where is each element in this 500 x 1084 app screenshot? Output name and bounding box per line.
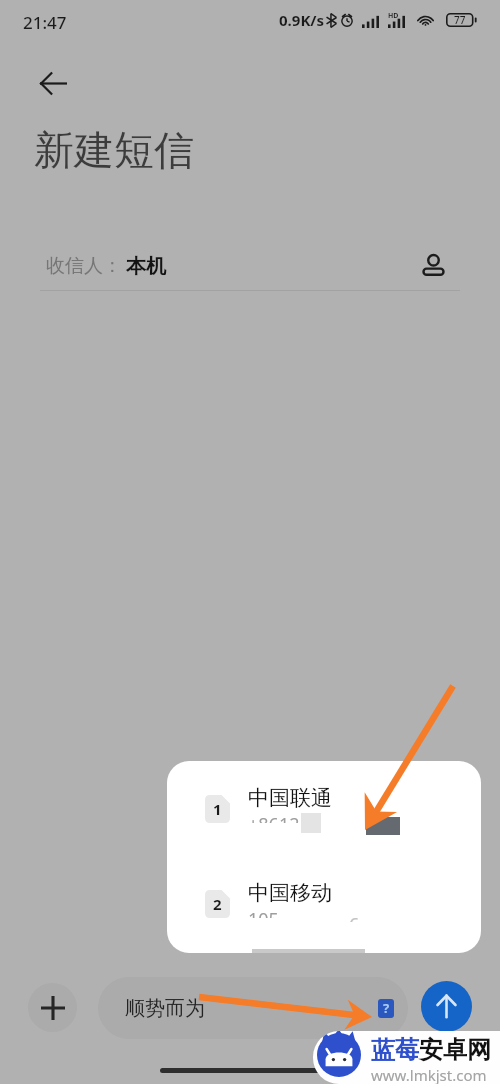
button[interactable]: 1 (167, 785, 481, 857)
button[interactable]: Add attachment (28, 983, 77, 1032)
staticText: 21:47 (23, 11, 67, 34)
button[interactable]: 顺势而为 (98, 977, 408, 1039)
staticText: www.lmkjst.com (371, 1065, 487, 1084)
staticText: ? (383, 999, 390, 1017)
staticText: 1 (213, 799, 222, 819)
staticText: +8612 (248, 812, 300, 823)
staticText: HD (388, 11, 399, 21)
staticText: 105 (248, 907, 279, 918)
staticText: 2 (213, 894, 222, 914)
button[interactable]: Back (31, 61, 75, 105)
staticText: 蓝莓 (371, 1035, 419, 1065)
button[interactable]: Send (421, 981, 472, 1032)
button[interactable]: 2 (167, 880, 481, 952)
staticText: 安卓网 (419, 1035, 491, 1065)
staticText: 收信人： (46, 254, 122, 278)
staticText: 0.9K/s (279, 10, 325, 30)
staticText: 中国移动 (248, 880, 332, 906)
staticText: 新建短信 (34, 125, 194, 175)
staticText: 顺势而为 (125, 996, 205, 1021)
button[interactable]: Pick contact (412, 245, 454, 287)
staticText: 6 (349, 912, 360, 922)
staticText: 中国联通 (248, 785, 332, 811)
staticText: 77 (454, 13, 466, 27)
staticText: 本机 (126, 254, 166, 279)
